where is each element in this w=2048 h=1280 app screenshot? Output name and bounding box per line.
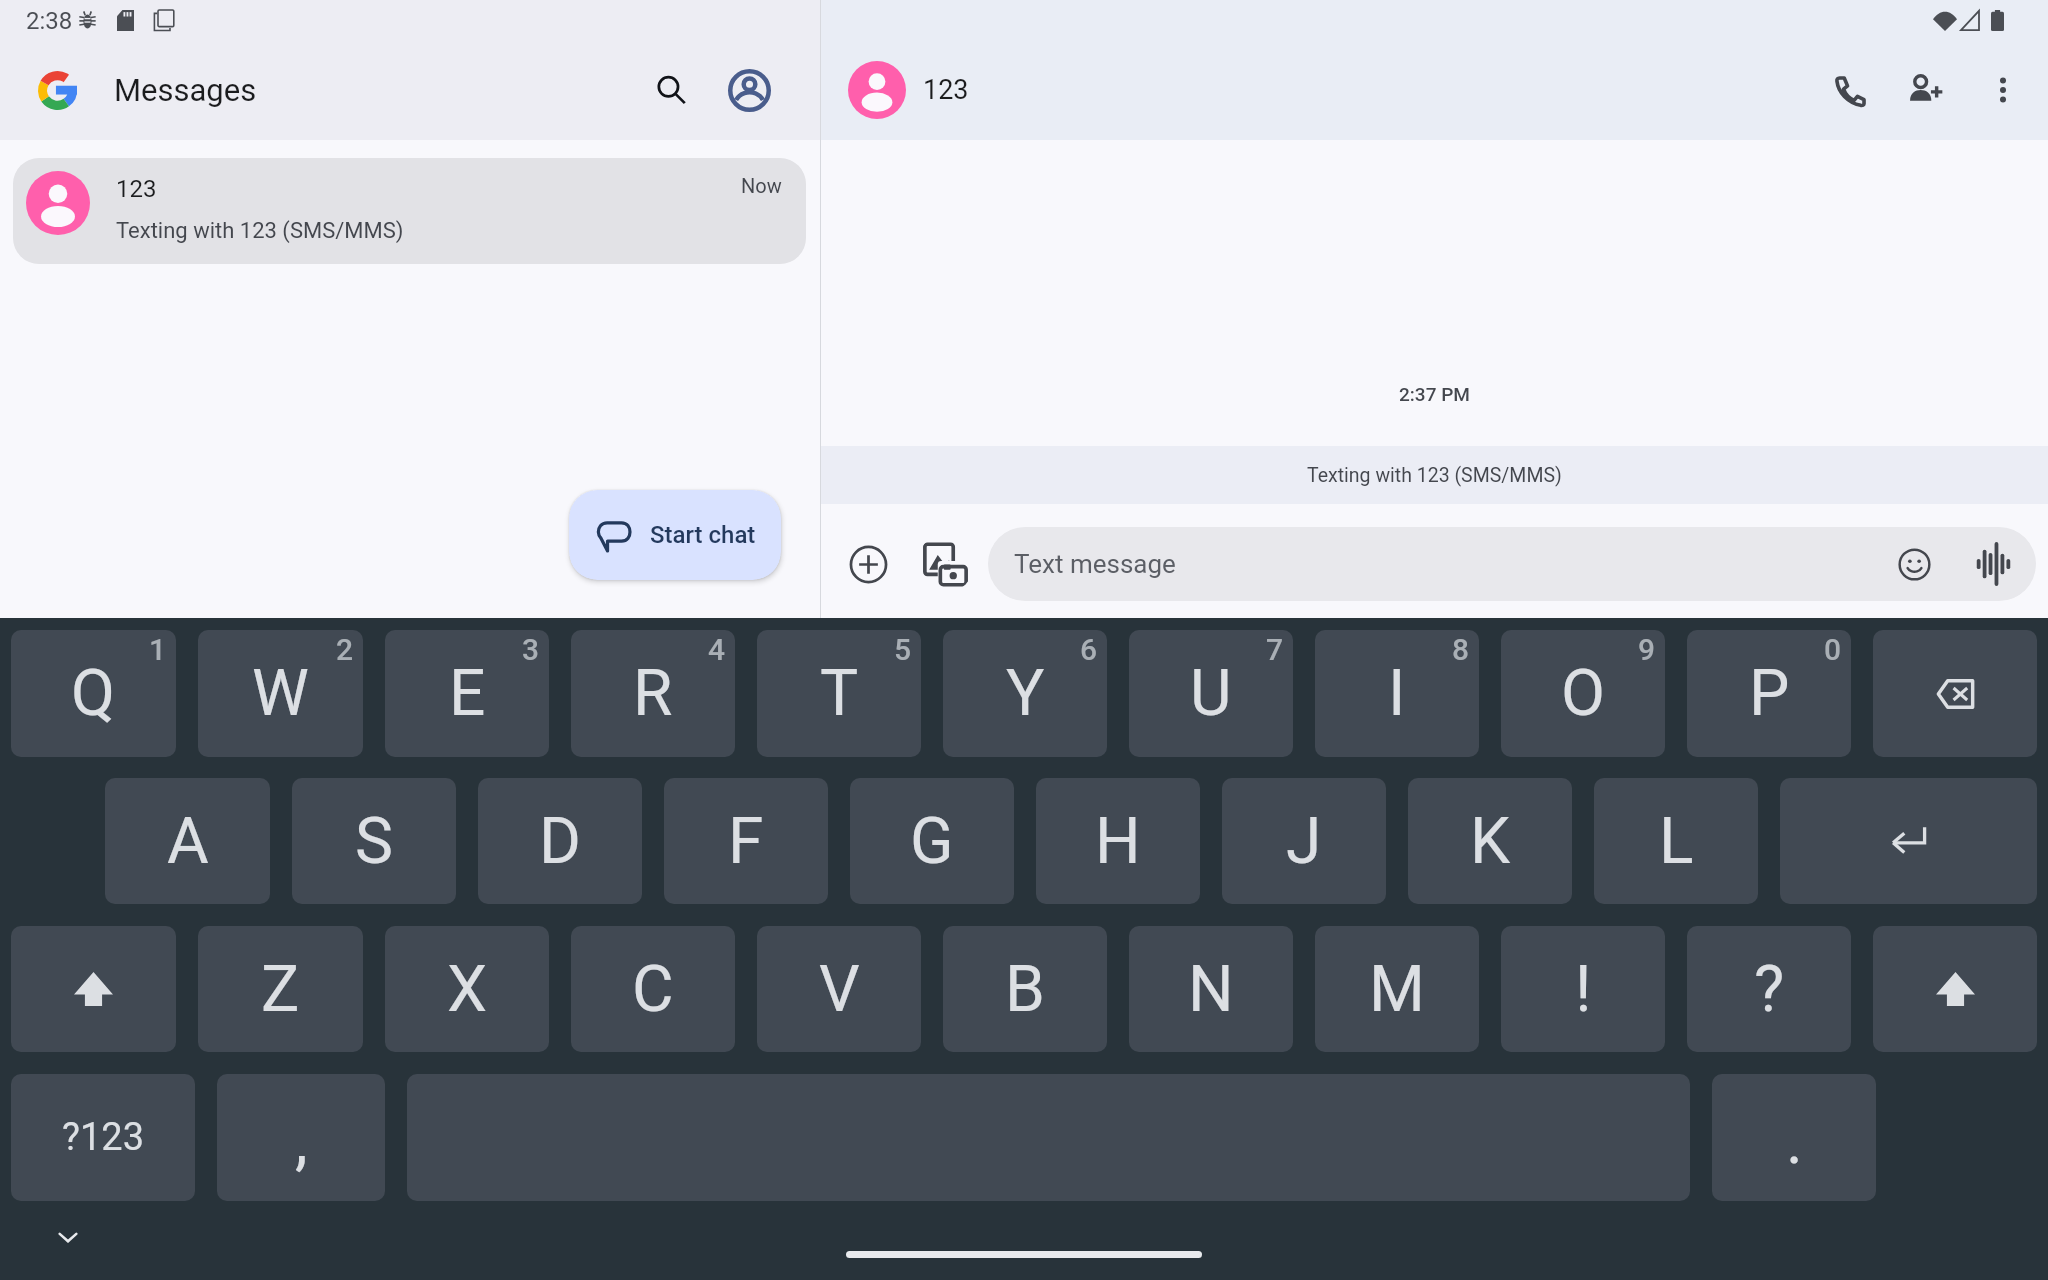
button[interactable]: Enter: [1780, 778, 2037, 904]
button[interactable]: Shift: [11, 926, 176, 1052]
staticText: 6: [1080, 632, 1098, 667]
staticText: T: [820, 656, 859, 731]
staticText: 4: [708, 632, 726, 667]
button[interactable]: Account: [720, 61, 778, 119]
button[interactable]: Search: [642, 61, 700, 119]
button[interactable]: Call: [1817, 58, 1881, 122]
button[interactable]: F: [664, 778, 828, 904]
button[interactable]: M: [1315, 926, 1479, 1052]
staticText: 1: [149, 632, 167, 667]
staticText: .: [1786, 1104, 1803, 1179]
button[interactable]: H: [1036, 778, 1200, 904]
button[interactable]: Text message: [988, 527, 2036, 601]
staticText: W: [252, 656, 309, 731]
staticText: N: [1188, 952, 1234, 1027]
staticText: O: [1561, 656, 1606, 731]
button[interactable]: N: [1129, 926, 1293, 1052]
button[interactable]: R: [571, 630, 735, 757]
button[interactable]: O: [1501, 630, 1665, 757]
staticText: I: [1388, 656, 1406, 731]
staticText: 0: [1824, 632, 1842, 667]
staticText: 9: [1638, 632, 1656, 667]
staticText: 2: [336, 632, 354, 667]
staticText: ?: [1754, 952, 1785, 1027]
staticText: A: [167, 804, 209, 879]
staticText: D: [539, 804, 581, 879]
staticText: S: [355, 804, 393, 879]
button[interactable]: E: [385, 630, 549, 757]
button[interactable]: Y: [943, 630, 1107, 757]
button[interactable]: 123: [13, 158, 806, 264]
staticText: V: [819, 952, 860, 1027]
button[interactable]: D: [478, 778, 642, 904]
staticText: Q: [71, 656, 116, 731]
button[interactable]: Q: [11, 630, 176, 757]
button[interactable]: ?: [1687, 926, 1851, 1052]
staticText: H: [1095, 804, 1141, 879]
staticText: Z: [261, 952, 300, 1027]
button[interactable]: Start chat: [569, 490, 781, 580]
button[interactable]: U: [1129, 630, 1293, 757]
button[interactable]: ,: [217, 1074, 385, 1201]
staticText: X: [447, 952, 488, 1027]
staticText: ?123: [62, 1115, 145, 1160]
button[interactable]: Gallery: [916, 535, 974, 593]
button[interactable]: X: [385, 926, 549, 1052]
staticText: Text message: [1014, 549, 1176, 579]
staticText: Messages: [114, 72, 257, 108]
button[interactable]: Hide keyboard: [50, 1219, 86, 1255]
staticText: Texting with 123 (SMS/MMS): [116, 218, 404, 244]
button[interactable]: Shift: [1873, 926, 2037, 1052]
button[interactable]: !: [1501, 926, 1665, 1052]
button[interactable]: B: [943, 926, 1107, 1052]
staticText: C: [632, 952, 674, 1027]
staticText: 8: [1452, 632, 1470, 667]
staticText: Y: [1006, 656, 1045, 731]
button[interactable]: W: [198, 630, 363, 757]
staticText: J: [1286, 804, 1322, 879]
staticText: L: [1659, 804, 1694, 879]
staticText: P: [1749, 656, 1790, 731]
button[interactable]: C: [571, 926, 735, 1052]
staticText: Now: [741, 174, 782, 197]
staticText: 5: [894, 632, 912, 667]
button[interactable]: G: [850, 778, 1014, 904]
staticText: 3: [522, 632, 540, 667]
staticText: Texting with 123 (SMS/MMS): [1307, 464, 1562, 487]
staticText: 7: [1266, 632, 1284, 667]
button[interactable]: Z: [198, 926, 363, 1052]
staticText: 123: [923, 74, 969, 106]
staticText: G: [910, 804, 954, 879]
button[interactable]: I: [1315, 630, 1479, 757]
button[interactable]: A: [105, 778, 270, 904]
staticText: K: [1470, 804, 1511, 879]
button[interactable]: .: [1712, 1074, 1876, 1201]
button[interactable]: Add attachment: [839, 535, 897, 593]
staticText: !: [1575, 952, 1592, 1027]
staticText: 2:37 PM: [1399, 383, 1470, 405]
staticText: U: [1190, 656, 1232, 731]
button[interactable]: S: [292, 778, 456, 904]
staticText: ,: [295, 1104, 308, 1179]
button[interactable]: J: [1222, 778, 1386, 904]
button[interactable]: K: [1408, 778, 1572, 904]
staticText: R: [633, 656, 673, 731]
staticText: Start chat: [650, 521, 756, 549]
button[interactable]: P: [1687, 630, 1851, 757]
button[interactable]: More options: [1971, 58, 2035, 122]
staticText: E: [449, 656, 486, 731]
button[interactable]: V: [757, 926, 921, 1052]
staticText: 123: [116, 175, 157, 203]
button[interactable]: Add people: [1894, 58, 1958, 122]
staticText: B: [1005, 952, 1045, 1027]
button[interactable]: Backspace: [1873, 630, 2037, 757]
button[interactable]: T: [757, 630, 921, 757]
button[interactable]: ?123: [11, 1074, 195, 1201]
staticText: F: [728, 804, 764, 879]
staticText: M: [1369, 952, 1425, 1027]
staticText: 2:38: [26, 7, 73, 35]
button[interactable]: L: [1594, 778, 1758, 904]
